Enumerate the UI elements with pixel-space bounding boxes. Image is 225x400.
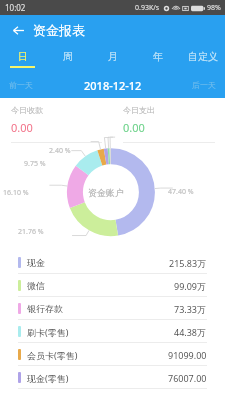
button[interactable]: 前一天 <box>6 77 36 93</box>
button[interactable]: 自定义 <box>180 45 225 72</box>
staticText: 9.75 % <box>24 159 46 169</box>
staticText: 月 <box>108 50 118 63</box>
staticText: 2018-12-12 <box>84 78 142 93</box>
staticText: 73.33万 <box>174 303 207 315</box>
button[interactable]: Back <box>8 20 28 40</box>
staticText: 银行存款 <box>27 303 63 314</box>
staticText: 微信 <box>27 280 45 291</box>
staticText: 21.76 % <box>18 227 44 237</box>
button[interactable]: 今日支出 <box>112 98 225 143</box>
staticText: 会员卡(零售) <box>27 349 78 361</box>
button[interactable]: 会员卡(零售) <box>0 343 225 366</box>
button[interactable]: 后一天 <box>189 77 219 93</box>
staticText: 0.93K/s <box>135 3 160 13</box>
staticText: 98% <box>207 3 221 13</box>
staticText: 76007.00 <box>168 372 207 384</box>
button[interactable]: 2018-12-12 <box>78 75 148 96</box>
staticText: 16.10 % <box>3 188 29 198</box>
button[interactable]: 刷卡(零售) <box>0 320 225 343</box>
staticText: 10:02 <box>5 2 26 13</box>
staticText: 今日收款 <box>11 105 43 115</box>
button[interactable]: 月 <box>90 45 135 72</box>
button[interactable]: 年 <box>135 45 180 72</box>
staticText: 现金(零售) <box>27 372 69 384</box>
button[interactable]: 现金(零售) <box>0 366 225 389</box>
staticText: 0.00 <box>123 120 145 135</box>
staticText: 周 <box>63 50 73 63</box>
staticText: 后一天 <box>192 80 216 90</box>
staticText: 日 <box>18 50 28 63</box>
staticText: 今日支出 <box>123 105 155 115</box>
staticText: 2.40 % <box>49 146 71 156</box>
staticText: 44.38万 <box>174 326 207 338</box>
staticText: 47.40 % <box>168 187 194 197</box>
button[interactable]: 周 <box>45 45 90 72</box>
button[interactable]: 微信 <box>0 274 225 297</box>
button[interactable]: 日 <box>0 45 45 72</box>
staticText: 0.00 <box>11 120 33 135</box>
staticText: 刷卡(零售) <box>27 326 69 338</box>
staticText: 年 <box>153 50 163 63</box>
button[interactable]: 现金 <box>0 251 225 274</box>
staticText: 91099.00 <box>168 349 207 361</box>
button[interactable]: 今日收款 <box>0 98 112 143</box>
staticText: 99.09万 <box>174 280 207 292</box>
staticText: 现金 <box>27 257 45 268</box>
staticText: 215.83万 <box>169 257 207 269</box>
staticText: 前一天 <box>9 80 33 90</box>
button[interactable]: 银行存款 <box>0 297 225 320</box>
staticText: 自定义 <box>188 50 218 63</box>
staticText: 资金账户 <box>88 187 124 198</box>
staticText: 资金报表 <box>33 22 85 38</box>
